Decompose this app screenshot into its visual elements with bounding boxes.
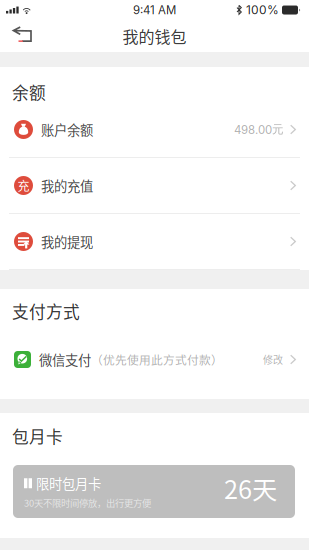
staticText: 我的提现 — [41, 232, 93, 251]
staticText: 我的钱包 — [122, 24, 186, 48]
staticText: 余额 — [12, 80, 46, 104]
staticText: 账户余额 — [41, 120, 93, 139]
staticText: 支付方式 — [12, 299, 80, 323]
staticText: 微信支付 — [39, 350, 91, 369]
button[interactable]: 账户余额 — [0, 102, 309, 157]
staticText: 30天不限时间停放，出行更方便 — [24, 496, 151, 509]
staticText: 限时包月卡 — [36, 474, 101, 493]
button[interactable]: 返回 — [0, 20, 44, 52]
staticText: 100% — [246, 3, 279, 17]
staticText: 26天 — [224, 470, 277, 506]
staticText: 9:41 AM — [133, 3, 176, 17]
button[interactable]: 充 — [0, 158, 309, 213]
button[interactable]: 微信支付 — [0, 333, 309, 399]
staticText: 修改 — [263, 352, 283, 367]
staticText: 498.00元 — [234, 122, 283, 137]
staticText: 包月卡 — [12, 424, 63, 448]
staticText: 我的充值 — [41, 176, 93, 195]
button[interactable]: 我的提现 — [0, 214, 309, 269]
staticText: 充 — [17, 177, 29, 194]
staticText: （优先使用此方式付款） — [91, 351, 223, 368]
button[interactable]: 限时包月卡 — [0, 465, 309, 518]
